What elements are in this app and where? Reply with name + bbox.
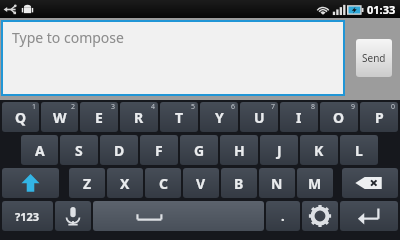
- staticText: O: [333, 108, 345, 127]
- button[interactable]: X: [107, 168, 143, 198]
- staticText: 1: [32, 102, 37, 112]
- other: USB connected: [3, 3, 18, 16]
- staticText: H: [234, 141, 245, 160]
- staticText: N: [271, 174, 283, 193]
- button[interactable]: D: [100, 135, 138, 165]
- staticText: 3: [111, 102, 116, 112]
- button[interactable]: .: [266, 201, 300, 231]
- button[interactable]: I: [280, 102, 318, 132]
- staticText: P: [375, 108, 384, 127]
- other: Android notification: [21, 3, 34, 16]
- staticText: ?123: [15, 209, 40, 224]
- button[interactable]: S: [60, 135, 98, 165]
- button[interactable]: T: [160, 102, 198, 132]
- staticText: 7: [271, 102, 276, 112]
- staticText: 2: [71, 102, 76, 112]
- button[interactable]: C: [145, 168, 181, 198]
- staticText: D: [114, 141, 125, 160]
- button[interactable]: Send: [356, 39, 392, 77]
- button[interactable]: L: [340, 135, 378, 165]
- staticText: W: [53, 108, 67, 127]
- staticText: G: [194, 141, 205, 160]
- button[interactable]: V: [183, 168, 219, 198]
- staticText: 0: [391, 102, 396, 112]
- button[interactable]: R: [120, 102, 158, 132]
- staticText: B: [234, 174, 244, 193]
- staticText: T: [175, 108, 184, 127]
- staticText: R: [134, 108, 144, 127]
- other: Wi-Fi signal: [316, 4, 330, 16]
- button[interactable]: Voice input: [55, 201, 91, 231]
- staticText: I: [296, 108, 302, 127]
- button[interactable]: Shift: [2, 168, 59, 198]
- button[interactable]: W: [41, 102, 78, 132]
- button[interactable]: G: [180, 135, 218, 165]
- button[interactable]: J: [260, 135, 298, 165]
- staticText: 6: [231, 102, 236, 112]
- staticText: U: [254, 108, 265, 127]
- button[interactable]: Q: [2, 102, 39, 132]
- button[interactable]: B: [221, 168, 257, 198]
- staticText: K: [314, 141, 324, 160]
- button[interactable]: O: [320, 102, 358, 132]
- button[interactable]: F: [140, 135, 178, 165]
- button[interactable]: U: [240, 102, 278, 132]
- button[interactable]: N: [259, 168, 295, 198]
- staticText: Z: [83, 174, 92, 193]
- button[interactable]: Backspace: [342, 168, 398, 198]
- staticText: 5: [191, 102, 196, 112]
- staticText: 01:33: [367, 2, 396, 17]
- button[interactable]: Type to compose: [3, 22, 343, 94]
- button[interactable]: E: [80, 102, 118, 132]
- staticText: Send: [362, 51, 386, 65]
- staticText: 4: [151, 102, 156, 112]
- staticText: Q: [15, 108, 27, 127]
- other: Mobile signal: [332, 4, 345, 16]
- button[interactable]: H: [220, 135, 258, 165]
- other: Battery charging: [347, 4, 364, 16]
- staticText: M: [308, 174, 322, 193]
- staticText: 8: [311, 102, 316, 112]
- button[interactable]: Z: [69, 168, 105, 198]
- button[interactable]: Space: [93, 201, 264, 231]
- staticText: L: [355, 141, 363, 160]
- staticText: .: [281, 207, 285, 225]
- staticText: Y: [215, 108, 224, 127]
- button[interactable]: K: [300, 135, 338, 165]
- staticText: C: [159, 174, 168, 193]
- staticText: V: [196, 174, 206, 193]
- staticText: S: [75, 141, 83, 160]
- button[interactable]: A: [21, 135, 58, 165]
- button[interactable]: P: [360, 102, 398, 132]
- staticText: E: [95, 108, 103, 127]
- staticText: Type to compose: [12, 28, 124, 47]
- staticText: A: [35, 141, 45, 160]
- staticText: F: [155, 141, 163, 160]
- button[interactable]: Enter: [340, 201, 398, 231]
- button[interactable]: Keyboard settings: [302, 201, 338, 231]
- button[interactable]: ?123: [2, 201, 53, 231]
- button[interactable]: M: [297, 168, 333, 198]
- staticText: J: [277, 141, 282, 160]
- button[interactable]: Y: [200, 102, 238, 132]
- staticText: X: [120, 174, 130, 193]
- staticText: 9: [351, 102, 356, 112]
